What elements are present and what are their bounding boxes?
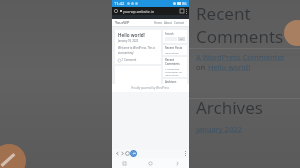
button[interactable]: Tabs	[180, 9, 184, 13]
staticText: 11:42	[114, 1, 125, 6]
button[interactable]: Menu	[185, 151, 186, 156]
staticText: Proudly powered by WordPress	[131, 86, 170, 90]
button[interactable]: Hello world!	[115, 30, 161, 64]
button[interactable]: More options	[186, 9, 187, 14]
staticText: January 18, 2022	[118, 39, 139, 43]
staticText: Home	[154, 21, 162, 25]
staticText: YourWP	[115, 20, 130, 25]
button[interactable]: Home	[114, 9, 118, 13]
button[interactable]: Back	[115, 151, 120, 156]
button[interactable]: Back	[174, 161, 179, 166]
staticText: Recent	[196, 2, 251, 25]
staticText: on	[196, 62, 208, 72]
staticText: A WordPress	[165, 67, 180, 70]
button[interactable]: About	[163, 21, 173, 25]
staticText: Search	[165, 32, 174, 36]
staticText: 1 Comment	[122, 58, 137, 62]
button[interactable]: Home	[125, 151, 130, 156]
staticText: Hello world!	[118, 32, 145, 38]
staticText: Archives	[196, 96, 263, 119]
staticText: Hello world!	[165, 51, 179, 54]
button[interactable]: Hello world!	[165, 73, 179, 76]
staticText: Recent Posts	[165, 46, 183, 50]
staticText: Contact	[174, 21, 185, 25]
button[interactable]: Go	[178, 37, 185, 41]
button[interactable]: Refresh	[130, 150, 137, 157]
button[interactable]: Home	[148, 161, 153, 166]
staticText: yourwp.website.in	[123, 9, 180, 14]
staticText: Commenter on	[165, 70, 182, 73]
staticText: Archives	[165, 80, 177, 83]
staticText: Comments	[196, 25, 284, 48]
staticText: January 2022	[196, 124, 242, 134]
button[interactable]: Recent apps	[122, 161, 127, 166]
staticText: A WordPress Commenter	[196, 52, 285, 62]
button[interactable]: Hello world!	[165, 51, 179, 54]
staticText: Recent Comments	[165, 58, 185, 66]
staticText: Go	[180, 38, 183, 41]
staticText: 86	[182, 1, 187, 6]
staticText: start writing!	[118, 51, 134, 55]
staticText: Hello world!	[165, 73, 179, 76]
button[interactable]: Commenter on	[165, 70, 182, 73]
button[interactable]: Home	[153, 21, 163, 25]
button[interactable]: Forward	[120, 151, 125, 156]
staticText: Hello world!	[208, 62, 251, 72]
button[interactable]: A WordPress	[165, 67, 180, 70]
button[interactable]: Home	[112, 7, 189, 15]
button[interactable]: Contact	[173, 21, 186, 25]
staticText: About	[164, 21, 172, 25]
staticText: Welcome to WordPress. This is your first…	[118, 46, 158, 50]
